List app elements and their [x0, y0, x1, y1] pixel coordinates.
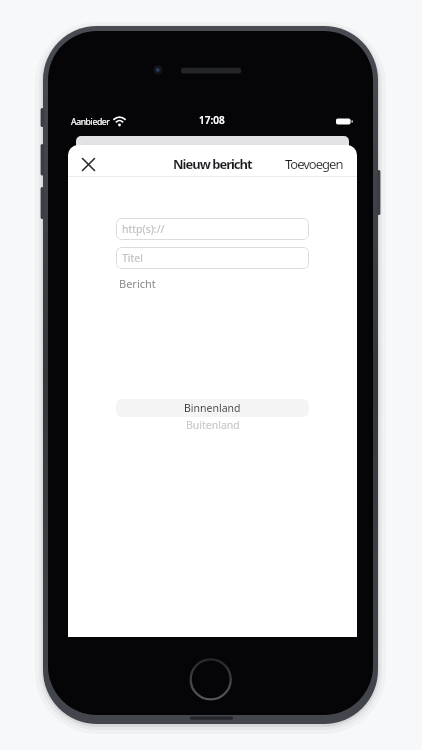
staticText: Binnenland	[184, 401, 241, 415]
staticText: Toevoegen	[285, 155, 343, 173]
staticText: Nieuw bericht	[173, 155, 252, 173]
button[interactable]: Titel	[116, 247, 309, 269]
button[interactable]: Bericht	[119, 276, 199, 290]
button[interactable]: http(s)://	[116, 218, 309, 240]
staticText: 17:08	[199, 113, 225, 127]
staticText: Titel	[122, 251, 143, 265]
staticText: Aanbieder	[71, 116, 110, 128]
button[interactable]: Toevoegen	[263, 155, 343, 173]
button[interactable]: Buitenland	[163, 418, 263, 432]
staticText: http(s)://	[122, 222, 165, 236]
button[interactable]: Binnenland	[116, 399, 309, 417]
button[interactable]	[77, 153, 99, 175]
staticText: Bericht	[119, 276, 156, 290]
staticText: Buitenland	[186, 418, 240, 432]
